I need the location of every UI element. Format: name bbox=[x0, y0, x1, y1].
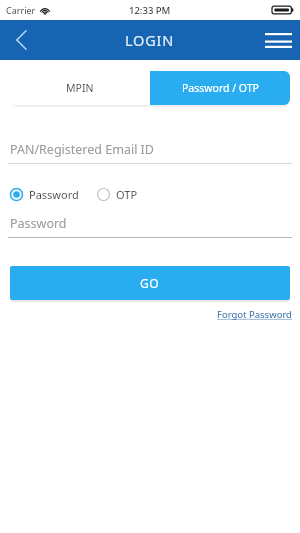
button[interactable]: Password / OTP bbox=[150, 71, 290, 105]
staticText: OTP bbox=[116, 187, 138, 202]
button[interactable]: Forgot Password bbox=[217, 308, 292, 321]
button[interactable]: Menu bbox=[256, 20, 300, 60]
staticText: PAN/Registered Email ID bbox=[10, 141, 154, 158]
button[interactable]: PAN/Registered Email ID bbox=[8, 141, 292, 164]
staticText: GO bbox=[140, 275, 160, 291]
staticText: 12:33 PM bbox=[129, 4, 171, 17]
button[interactable]: Password bbox=[10, 187, 79, 202]
button[interactable]: Back bbox=[0, 20, 42, 60]
staticText: Password bbox=[29, 187, 79, 202]
staticText: Forgot Password bbox=[217, 308, 292, 321]
staticText: Password bbox=[10, 215, 67, 232]
button[interactable]: GO bbox=[10, 266, 290, 300]
staticText: Carrier bbox=[6, 4, 36, 16]
button[interactable]: OTP bbox=[97, 187, 138, 202]
button[interactable]: MPIN bbox=[10, 71, 150, 105]
staticText: LOGIN bbox=[125, 30, 175, 50]
button[interactable]: Password bbox=[8, 215, 292, 238]
staticText: Password / OTP bbox=[182, 81, 259, 95]
staticText: MPIN bbox=[66, 81, 94, 95]
